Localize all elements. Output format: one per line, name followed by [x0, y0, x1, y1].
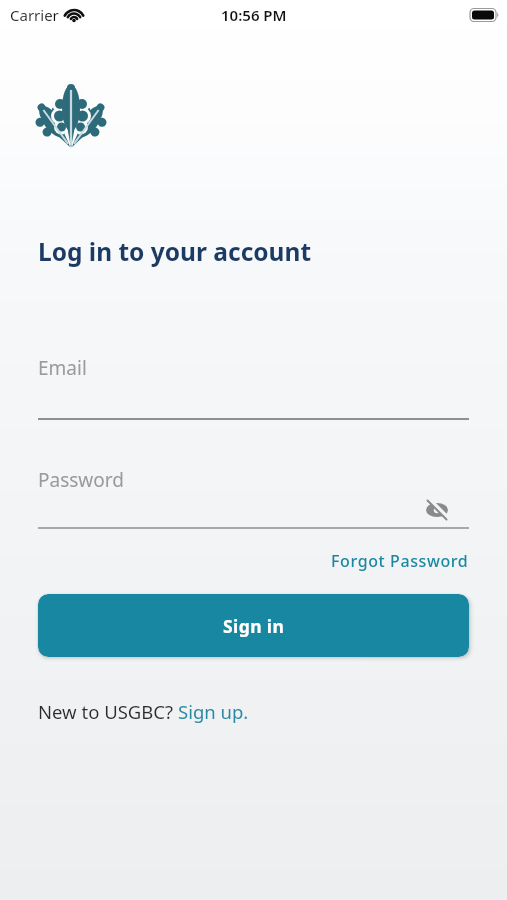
- staticText: Log in to your account: [38, 235, 312, 268]
- staticText: Password: [38, 467, 124, 493]
- button[interactable]: Sign in: [38, 594, 469, 657]
- button[interactable]: [425, 498, 449, 522]
- staticText: New to USGBC?: [38, 699, 178, 724]
- staticText: Email: [38, 355, 87, 381]
- staticText: Carrier: [10, 5, 59, 25]
- button[interactable]: Password: [38, 467, 469, 529]
- button[interactable]: Sign up.: [178, 699, 249, 724]
- staticText: 10:56 PM: [221, 5, 287, 25]
- button[interactable]: Email: [38, 355, 469, 420]
- button[interactable]: Forgot Password: [331, 550, 469, 572]
- staticText: Sign in: [223, 614, 285, 638]
